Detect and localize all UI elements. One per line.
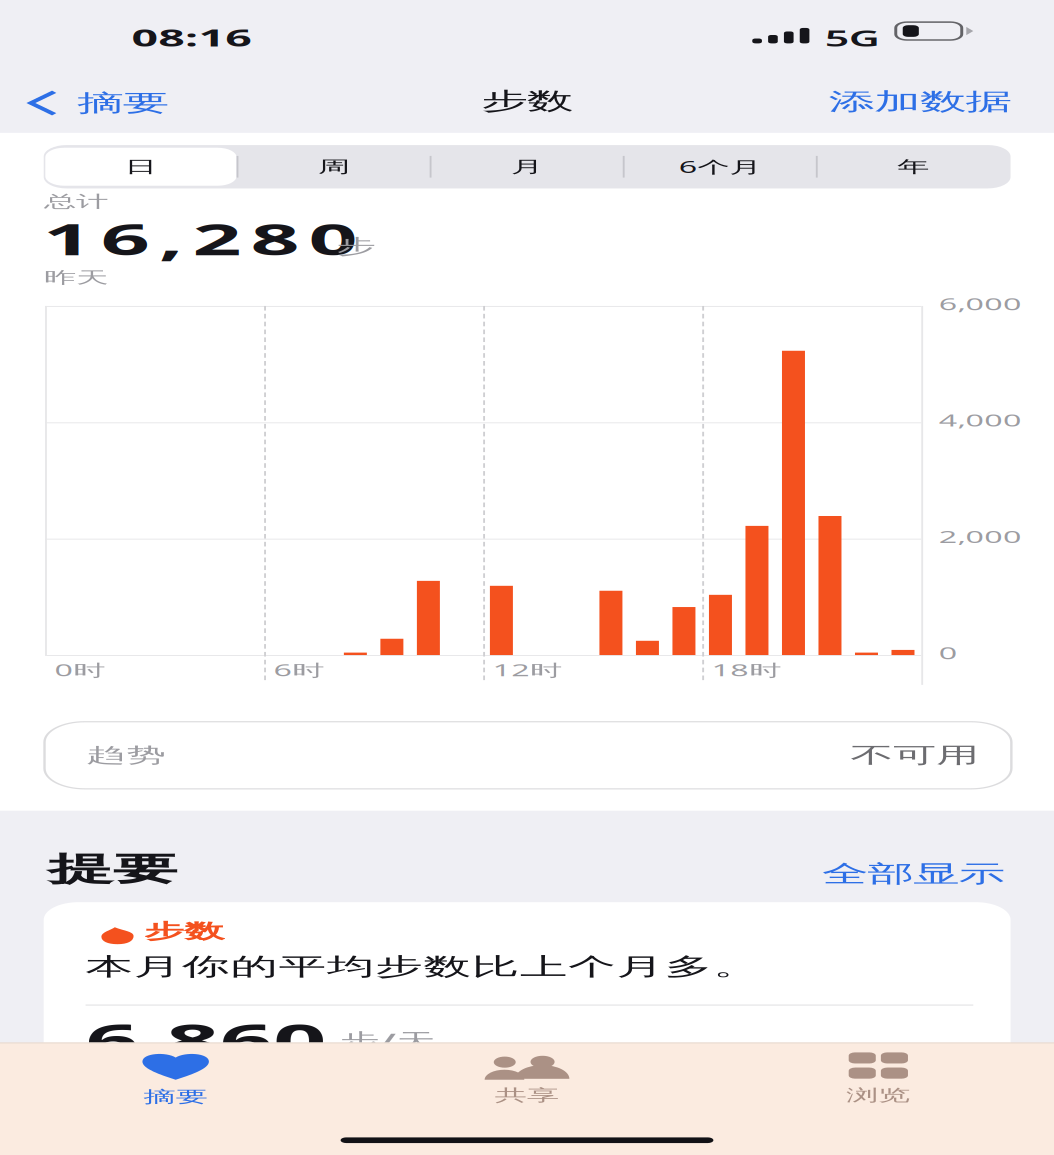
button[interactable]: 摘要 — [0, 775, 131, 827]
staticText: 浏览 — [315, 801, 339, 815]
button[interactable]: 摘要 — [0, 56, 64, 96]
staticText: 趋势 — [32, 548, 62, 566]
staticText: 6,000 — [350, 216, 381, 232]
staticText: 16,280 — [16, 155, 133, 197]
staticText: 步 — [125, 173, 140, 191]
staticText: 摘要 — [53, 802, 77, 816]
button[interactable]: 浏览 — [262, 775, 393, 827]
button[interactable]: 月 — [161, 109, 232, 137]
button[interactable]: 年 — [305, 109, 376, 137]
staticText: 提要 — [18, 626, 66, 656]
button[interactable]: 6个月 — [233, 109, 304, 137]
staticText: 4,000 — [350, 302, 381, 318]
staticText: 全部显示 — [306, 634, 374, 655]
staticText: 18时 — [265, 486, 291, 502]
staticText: 本月你的平均步数比上个月多。 — [32, 702, 284, 724]
staticText: 共享 — [184, 801, 208, 815]
button[interactable]: 周 — [89, 109, 160, 137]
staticText: 6,860 — [32, 744, 122, 790]
button[interactable]: 全部显示 — [303, 630, 377, 659]
button[interactable]: 趋势 — [17, 532, 377, 582]
button[interactable]: 共享 — [131, 775, 262, 827]
staticText: 步/天 — [127, 757, 163, 777]
button[interactable]: 日 — [17, 109, 88, 137]
